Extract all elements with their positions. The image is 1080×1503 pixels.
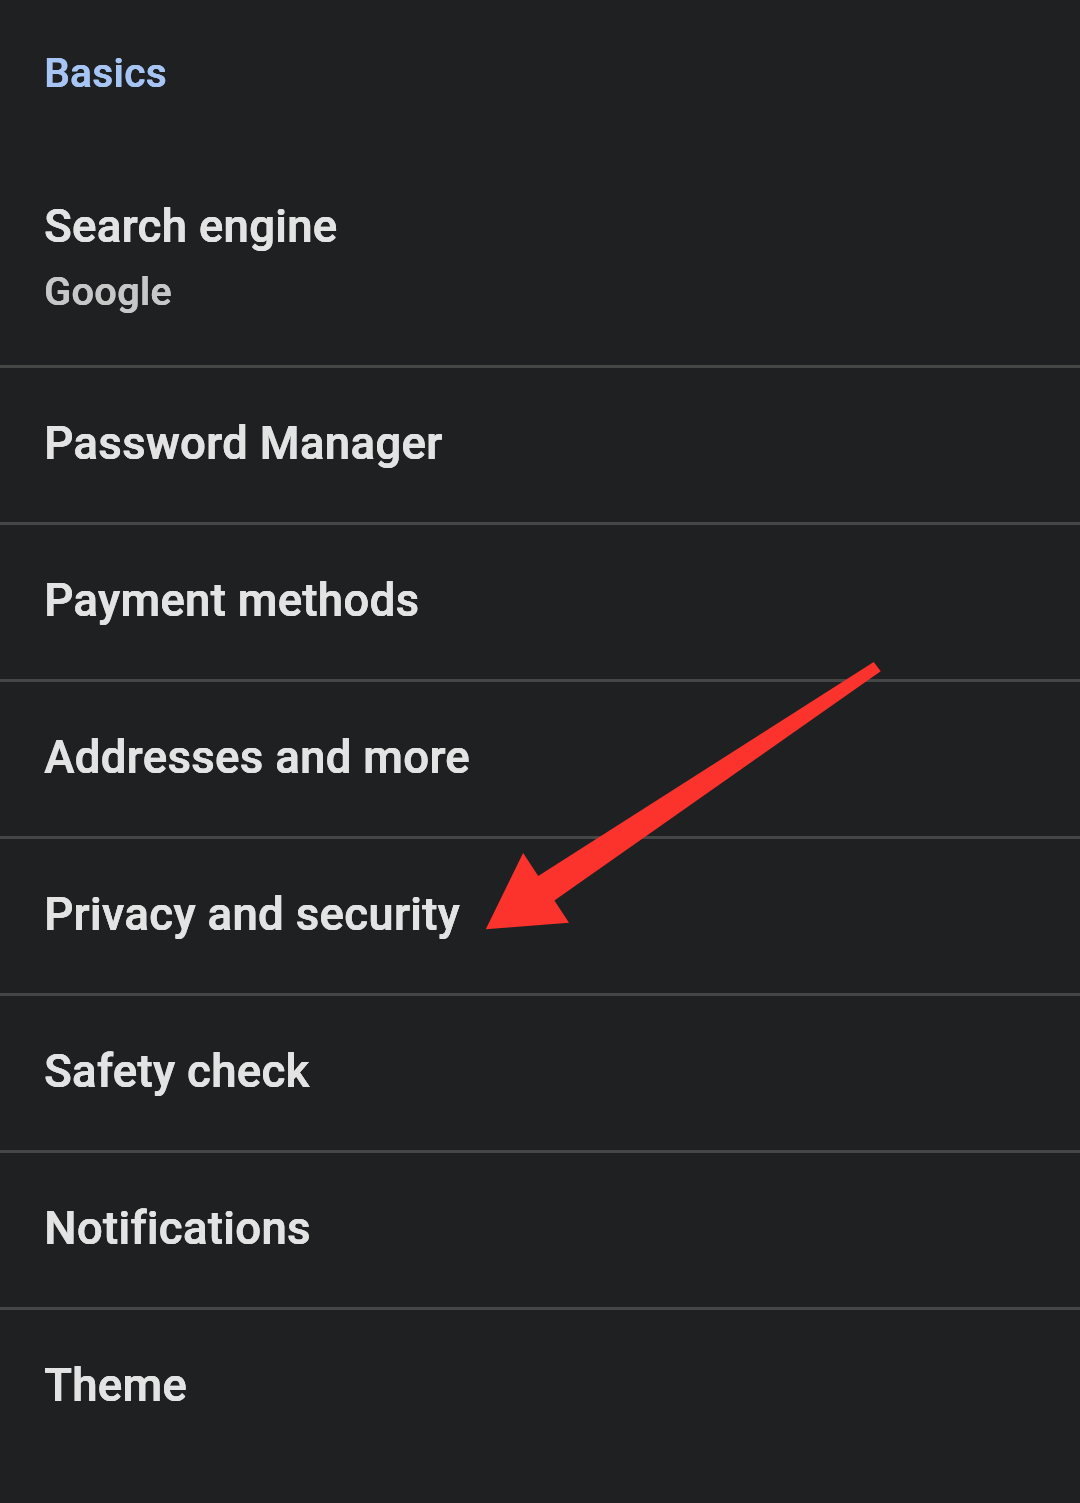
staticText: Payment methods bbox=[44, 574, 420, 627]
button[interactable]: Password Manager bbox=[0, 368, 1080, 522]
staticText: Addresses and more bbox=[44, 731, 470, 784]
staticText: Notifications bbox=[44, 1202, 311, 1255]
staticText: Basics bbox=[44, 49, 167, 96]
button[interactable]: Theme bbox=[0, 1310, 1080, 1503]
staticText: Theme bbox=[44, 1359, 187, 1412]
staticText: Safety check bbox=[44, 1045, 310, 1098]
staticText: Privacy and security bbox=[44, 888, 460, 941]
staticText: Search engine bbox=[44, 200, 338, 253]
staticText: Google bbox=[44, 268, 172, 314]
button[interactable]: Notifications bbox=[0, 1153, 1080, 1307]
button[interactable]: Payment methods bbox=[0, 525, 1080, 679]
other: Annotation arrow pointing at Privacy and… bbox=[485, 661, 885, 933]
button[interactable]: Addresses and more bbox=[0, 682, 1080, 836]
button[interactable]: Safety check bbox=[0, 996, 1080, 1150]
button[interactable]: Privacy and security bbox=[0, 839, 1080, 993]
button[interactable]: Search engine bbox=[0, 130, 1080, 365]
staticText: Password Manager bbox=[44, 417, 443, 470]
